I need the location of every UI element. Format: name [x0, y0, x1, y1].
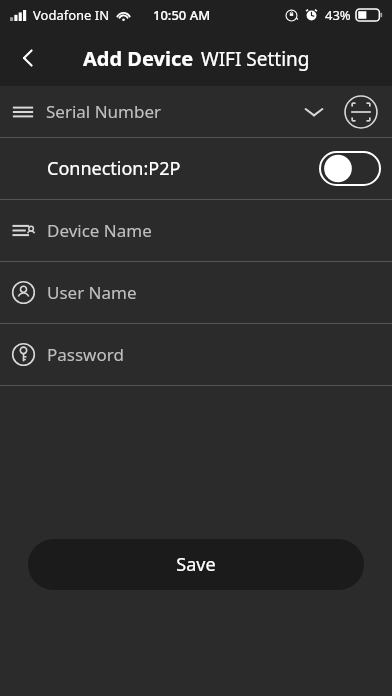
staticText: Serial Number	[46, 100, 162, 123]
button[interactable]: Scan code	[342, 93, 380, 131]
button[interactable]: Connection:P2P	[0, 138, 392, 199]
staticText: 10:50 AM	[153, 6, 211, 24]
staticText: Device Name	[47, 219, 152, 242]
button[interactable]: Password	[0, 324, 392, 385]
staticText: Password	[47, 343, 124, 366]
staticText: WIFI Setting	[201, 46, 310, 72]
button[interactable]: Save	[28, 539, 364, 590]
staticText: Connection:P2P	[47, 156, 181, 181]
button[interactable]: Back	[6, 36, 50, 80]
staticText: Add Device	[83, 45, 194, 72]
staticText: 43%	[325, 6, 351, 24]
button[interactable]: Connection toggle	[320, 152, 380, 185]
button[interactable]: Serial Number	[0, 86, 392, 137]
staticText: Save	[176, 552, 216, 577]
staticText: User Name	[47, 281, 137, 304]
button[interactable]: User Name	[0, 262, 392, 323]
button[interactable]: Expand	[296, 94, 332, 130]
button[interactable]: Device Name	[0, 200, 392, 261]
staticText: Vodafone IN	[33, 6, 110, 24]
